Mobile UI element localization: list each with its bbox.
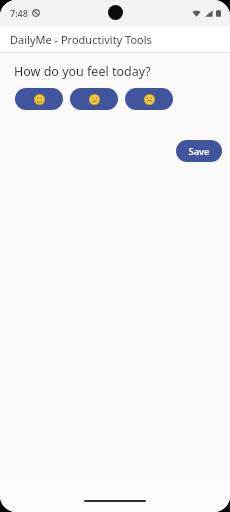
button[interactable]: Mood option 2 — [70, 88, 118, 110]
button[interactable]: Mood option 3 — [125, 88, 173, 110]
staticText: 7:48 — [10, 7, 28, 19]
staticText: How do you feel today? — [14, 63, 151, 80]
staticText: DailyMe - Productivity Tools — [10, 32, 152, 47]
staticText: Save — [188, 145, 210, 158]
button[interactable]: Mood option 1 — [15, 88, 63, 110]
button[interactable]: Save — [176, 140, 222, 162]
